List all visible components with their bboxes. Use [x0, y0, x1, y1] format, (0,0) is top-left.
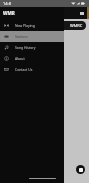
staticText: Song History [15, 45, 36, 50]
button[interactable]: Song History [0, 42, 64, 53]
button[interactable]: WMRC [2, 21, 86, 30]
staticText: Stations [15, 34, 28, 39]
staticText: 14:8 [3, 1, 11, 6]
staticText: About [15, 56, 25, 61]
button[interactable]: Stop [76, 165, 85, 174]
button[interactable]: More options [78, 10, 85, 17]
staticText: WMRC [70, 23, 83, 28]
button[interactable]: Contact Us [0, 64, 64, 75]
staticText: WMR [3, 10, 15, 16]
button[interactable]: Now Playing [0, 20, 64, 31]
staticText: Now Playing [15, 23, 35, 28]
button[interactable]: About [0, 53, 64, 64]
button[interactable]: Stations [0, 31, 64, 42]
staticText: Contact Us [15, 67, 33, 72]
